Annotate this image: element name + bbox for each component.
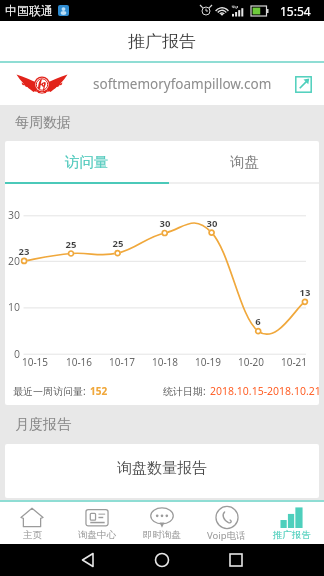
staticText: 30 xyxy=(200,217,224,230)
staticText: 10-16 xyxy=(62,355,96,369)
staticText: 25 xyxy=(59,238,83,251)
staticText: 25 xyxy=(106,237,130,250)
button[interactable]: 询盘中心 xyxy=(64,502,129,544)
button[interactable]: 推广报告 xyxy=(259,502,324,544)
staticText: 10-21 xyxy=(277,355,311,369)
staticText: 13 xyxy=(293,286,317,299)
staticText: 月度报告 xyxy=(15,416,71,434)
staticText: 访问量 xyxy=(65,153,109,171)
staticText: 23 xyxy=(12,245,36,258)
staticText: Voip电话 xyxy=(207,529,246,542)
staticText: 6 xyxy=(246,315,270,328)
staticText: 中国联通 xyxy=(5,3,53,18)
staticText: 统计日期: xyxy=(163,384,206,398)
staticText: 即时询盘 xyxy=(143,529,181,541)
button[interactable]: Voip电话 xyxy=(194,502,259,544)
button[interactable]: Open website xyxy=(288,69,318,99)
button[interactable]: 主页 xyxy=(0,502,64,544)
staticText: 每周数据 xyxy=(15,114,71,132)
staticText: 推广报告 xyxy=(273,529,311,541)
button[interactable]: 访问量 xyxy=(5,141,169,182)
staticText: 10-17 xyxy=(105,355,139,369)
staticText: 152 xyxy=(90,384,108,398)
button[interactable]: softmemoryfoampillow.com xyxy=(0,63,324,105)
staticText: 10-18 xyxy=(148,355,182,369)
staticText: 10-15 xyxy=(18,355,52,369)
button[interactable]: 即时询盘 xyxy=(129,502,194,544)
staticText: 30 xyxy=(153,217,177,230)
staticText: softmemoryfoampillow.com xyxy=(93,75,272,93)
staticText: 15:54 xyxy=(280,3,311,19)
staticText: 推广报告 xyxy=(128,31,196,52)
staticText: 询盘 xyxy=(230,153,259,171)
staticText: 10 xyxy=(5,300,20,314)
staticText: 2018.10.15-2018.10.21 xyxy=(210,384,319,398)
staticText: 10-20 xyxy=(234,355,268,369)
staticText: 20 xyxy=(5,254,20,268)
staticText: 最近一周访问量: xyxy=(13,384,86,398)
staticText: 10-19 xyxy=(191,355,225,369)
staticText: 询盘数量报告 xyxy=(117,459,207,478)
staticText: 主页 xyxy=(23,529,42,541)
button[interactable]: 询盘数量报告 xyxy=(5,444,319,498)
button[interactable]: 询盘 xyxy=(169,141,319,182)
staticText: 询盘中心 xyxy=(78,529,116,541)
staticText: 30 xyxy=(5,208,20,222)
staticText: 0 xyxy=(5,347,20,361)
